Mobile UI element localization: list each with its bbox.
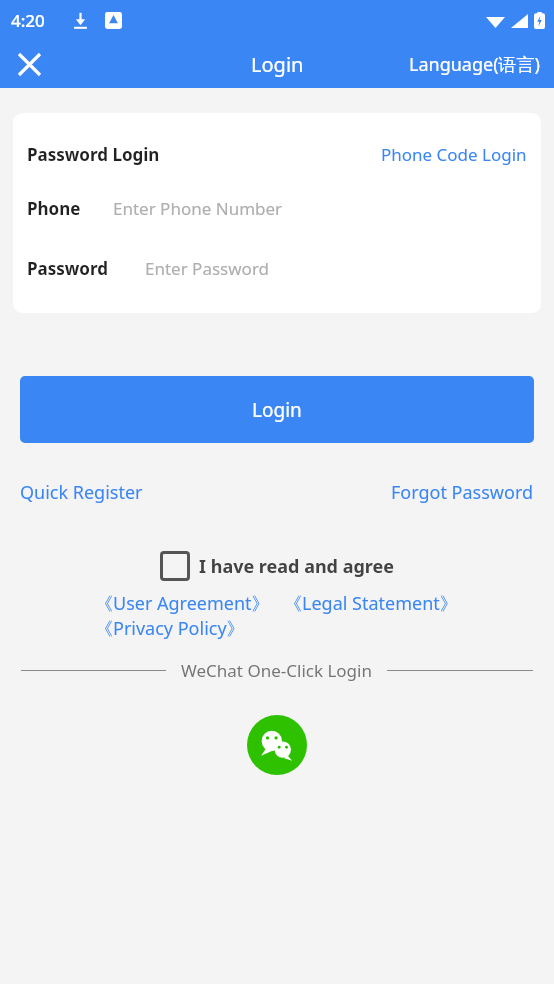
staticText: I have read and agree bbox=[199, 554, 395, 579]
staticText: 《Privacy Policy》 bbox=[95, 616, 245, 641]
staticText: Enter Password bbox=[145, 257, 270, 280]
button[interactable]: 《User Agreement》 bbox=[95, 591, 270, 616]
staticText: Phone Code Login bbox=[381, 143, 527, 166]
staticText: Language(语言) bbox=[409, 52, 540, 77]
staticText: 《Legal Statement》 bbox=[284, 591, 458, 616]
button[interactable]: Close bbox=[8, 43, 50, 85]
button[interactable]: Password bbox=[13, 255, 541, 281]
button[interactable]: 《Privacy Policy》 bbox=[95, 616, 245, 641]
button[interactable]: Phone Code Login bbox=[381, 143, 527, 166]
button[interactable]: Login bbox=[20, 376, 534, 443]
staticText: Login bbox=[252, 397, 302, 423]
staticText: WeChat One-Click Login bbox=[181, 659, 372, 682]
staticText: Password bbox=[27, 257, 145, 280]
staticText: Password Login bbox=[27, 143, 160, 166]
button[interactable]: Phone bbox=[13, 195, 541, 221]
button[interactable]: WeChat One-Click Login bbox=[247, 715, 307, 775]
staticText: Enter Phone Number bbox=[113, 197, 283, 220]
staticText: Forgot Password bbox=[391, 480, 534, 505]
button[interactable]: Quick Register bbox=[20, 480, 143, 505]
button[interactable]: 《Legal Statement》 bbox=[284, 591, 458, 616]
button[interactable]: Forgot Password bbox=[391, 480, 534, 505]
button[interactable]: Language(语言) bbox=[395, 44, 554, 85]
staticText: 4:20 bbox=[11, 9, 45, 32]
staticText: Quick Register bbox=[20, 480, 143, 505]
staticText: Phone bbox=[27, 197, 113, 220]
staticText: 《User Agreement》 bbox=[95, 591, 270, 616]
staticText: Login bbox=[251, 51, 304, 78]
button[interactable]: I have read and agree bbox=[160, 551, 395, 581]
